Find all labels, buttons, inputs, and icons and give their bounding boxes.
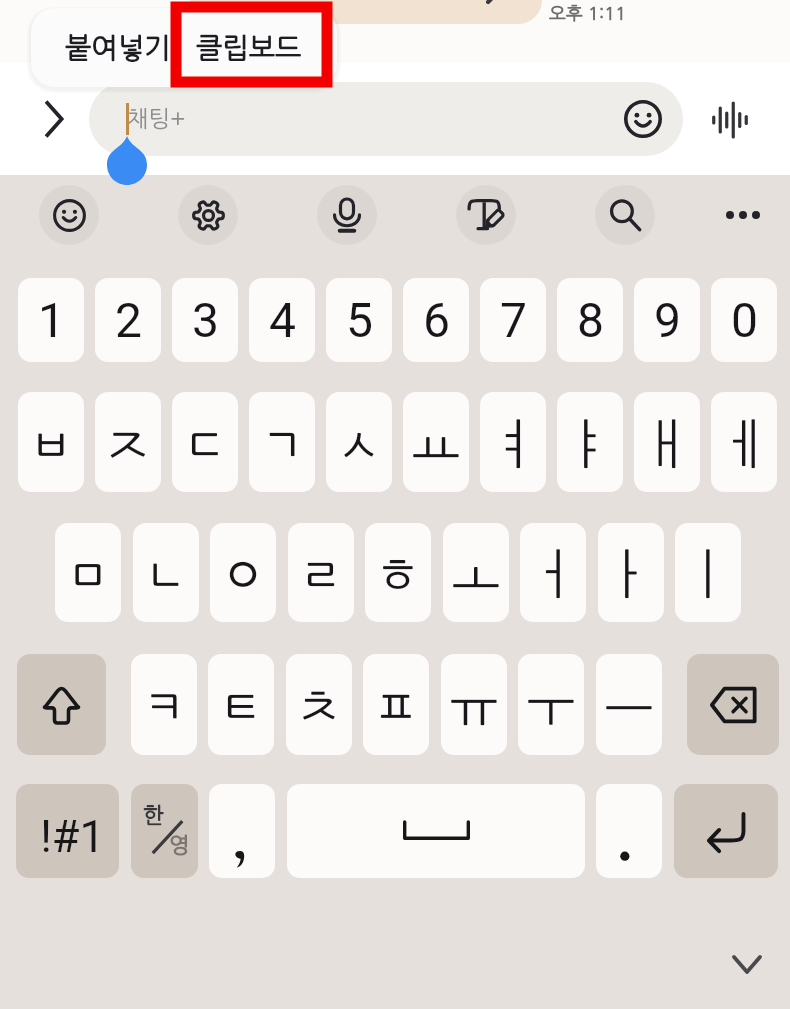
button[interactable]: backspace: [687, 654, 779, 755]
button[interactable]: ㅡ: [596, 654, 662, 755]
staticText: 9: [654, 292, 681, 348]
staticText: 채팅+: [127, 107, 186, 130]
button[interactable]: 8: [557, 278, 623, 362]
staticText: 2: [115, 292, 142, 348]
button[interactable]: ㅎ: [365, 523, 431, 622]
staticText: 영: [169, 834, 190, 856]
staticText: ㄱ: [257, 418, 307, 471]
staticText: 3: [192, 292, 219, 348]
button[interactable]: comma: [209, 784, 275, 878]
button[interactable]: shift: [17, 654, 106, 755]
button[interactable]: Settings: [178, 185, 238, 245]
staticText: ㅓ: [528, 548, 578, 601]
button[interactable]: Emoji: [609, 85, 677, 153]
button[interactable]: Emoji: [39, 185, 99, 245]
staticText: ㅗ: [451, 548, 501, 601]
button[interactable]: !#1: [16, 784, 119, 878]
staticText: 붙여넣기: [65, 34, 171, 62]
button[interactable]: More options: [713, 185, 773, 245]
staticText: ㅡ: [604, 680, 654, 733]
button[interactable]: ㅠ: [441, 654, 507, 755]
button[interactable]: ㄷ: [172, 392, 238, 492]
button[interactable]: 채팅+: [89, 82, 683, 156]
button[interactable]: ㅅ: [326, 392, 392, 492]
button[interactable]: ㅇ: [210, 523, 276, 622]
button[interactable]: ㄹ: [288, 523, 354, 622]
staticText: ㅕ: [488, 418, 538, 471]
button[interactable]: hanyeong: [131, 784, 198, 878]
button[interactable]: ㄱ: [249, 392, 315, 492]
button[interactable]: 클립보드: [184, 8, 314, 87]
button[interactable]: 1: [18, 278, 84, 362]
button[interactable]: ㅋ: [131, 654, 197, 755]
button[interactable]: Voice typing: [317, 185, 377, 245]
staticText: 8: [577, 292, 604, 348]
button[interactable]: Handwriting: [456, 185, 516, 245]
button[interactable]: period: [596, 784, 662, 878]
button[interactable]: ㅐ: [634, 392, 700, 492]
staticText: ㅁ: [63, 548, 113, 601]
button[interactable]: Voice message: [704, 94, 756, 146]
button[interactable]: 9: [634, 278, 700, 362]
button[interactable]: enter: [674, 784, 778, 878]
staticText: ㅛ: [411, 418, 461, 471]
button[interactable]: Show more options: [29, 94, 79, 144]
button[interactable]: ㅑ: [557, 392, 623, 492]
button[interactable]: 7: [480, 278, 546, 362]
button[interactable]: Search: [595, 185, 655, 245]
button[interactable]: ㅕ: [480, 392, 546, 492]
button[interactable]: ㅗ: [443, 523, 509, 622]
button[interactable]: ㅣ: [675, 523, 741, 622]
staticText: ㅌ: [216, 680, 266, 733]
staticText: 한: [143, 804, 164, 826]
button[interactable]: ㅛ: [403, 392, 469, 492]
staticText: ㅜ: [526, 680, 576, 733]
staticText: ㅏ: [606, 548, 656, 601]
button[interactable]: ㅓ: [520, 523, 586, 622]
button[interactable]: 5: [326, 278, 392, 362]
staticText: ㄹ: [296, 548, 346, 601]
button[interactable]: 6: [403, 278, 469, 362]
staticText: ㅂ: [26, 418, 76, 471]
staticText: !#1: [40, 810, 105, 863]
staticText: ㄷ: [180, 418, 230, 471]
button[interactable]: ㅈ: [95, 392, 161, 492]
staticText: 클립보드: [196, 34, 302, 62]
staticText: ㅊ: [294, 680, 344, 733]
staticText: 6: [423, 292, 450, 348]
staticText: ㅍ: [371, 680, 421, 733]
button[interactable]: ㅔ: [711, 392, 777, 492]
button[interactable]: ㅂ: [18, 392, 84, 492]
staticText: ㅐ: [642, 418, 692, 471]
staticText: ㅣ: [683, 548, 733, 601]
staticText: ㅎ: [373, 548, 423, 601]
staticText: 4: [269, 292, 296, 348]
button[interactable]: ㅊ: [286, 654, 352, 755]
staticText: ㅋ: [139, 680, 189, 733]
button[interactable]: ㅌ: [208, 654, 274, 755]
button[interactable]: 3: [172, 278, 238, 362]
staticText: 7: [500, 292, 527, 348]
staticText: ㅔ: [719, 418, 769, 471]
staticText: 0: [731, 292, 758, 348]
button[interactable]: ㅁ: [55, 523, 121, 622]
button[interactable]: ㄴ: [133, 523, 199, 622]
button[interactable]: Hide keyboard: [719, 936, 775, 992]
button[interactable]: ㅍ: [363, 654, 429, 755]
button[interactable]: ㅏ: [598, 523, 664, 622]
button[interactable]: 붙여넣기: [59, 8, 176, 87]
button[interactable]: ㅜ: [518, 654, 584, 755]
staticText: ㅈ: [103, 418, 153, 471]
staticText: 오후 1:11: [549, 5, 627, 23]
staticText: ㅅ: [334, 418, 384, 471]
staticText: ㄴ: [141, 548, 191, 601]
button[interactable]: space: [287, 784, 585, 878]
button[interactable]: 0: [711, 278, 777, 362]
staticText: 5: [346, 292, 373, 348]
staticText: ㅑ: [565, 418, 615, 471]
button[interactable]: 4: [249, 278, 315, 362]
staticText: ㅠ: [449, 680, 499, 733]
button[interactable]: 2: [95, 278, 161, 362]
staticText: ㅇ: [218, 548, 268, 601]
staticText: 1: [38, 292, 65, 348]
